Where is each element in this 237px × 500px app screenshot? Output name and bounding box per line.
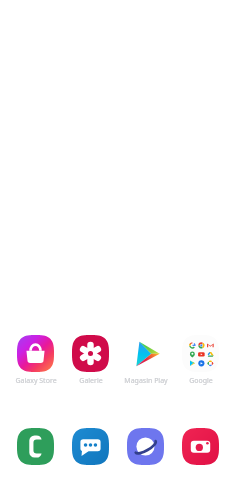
button[interactable]: Camera [173, 428, 228, 465]
button[interactable]: Magasin Play [118, 335, 173, 386]
button[interactable]: Internet [118, 428, 173, 465]
staticText: Galaxy Store [15, 376, 57, 386]
button[interactable]: Galerie [63, 335, 118, 386]
staticText: Galerie [79, 376, 103, 386]
button[interactable]: Phone [8, 428, 63, 465]
staticText: Magasin Play [124, 376, 168, 386]
button[interactable]: Google [173, 335, 228, 386]
button[interactable]: Galaxy Store [8, 335, 63, 386]
staticText: Google [189, 376, 213, 386]
button[interactable]: Messages [63, 428, 118, 465]
